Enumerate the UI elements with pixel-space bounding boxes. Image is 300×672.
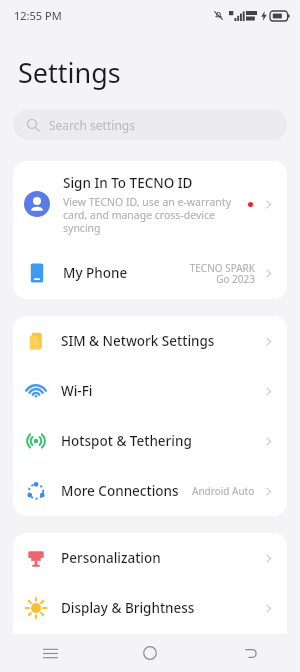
button[interactable]: More Connections [13, 466, 287, 516]
button[interactable]: Back [230, 634, 270, 672]
staticText: 12:55 PM [14, 8, 62, 23]
button[interactable]: Search settings [13, 109, 287, 140]
staticText: More Connections [61, 482, 179, 500]
staticText: Settings [18, 54, 121, 91]
staticText: TECNO SPARK Go 2023 [187, 261, 255, 286]
button[interactable]: Sign In To TECNO ID [13, 161, 287, 247]
button[interactable]: Sound & Vibration [13, 633, 287, 672]
staticText: SIM & Network Settings [61, 332, 215, 350]
staticText: Hotspot & Tethering [61, 432, 192, 450]
staticText: Android Auto [192, 484, 255, 498]
staticText: View TECNO ID, use an e-warranty card, a… [63, 195, 242, 235]
staticText: Search settings [49, 117, 135, 133]
staticText: Sound & Vibration [61, 644, 178, 662]
staticText: Display & Brightness [61, 599, 195, 617]
button[interactable]: Personalization [13, 533, 287, 583]
button[interactable]: Display & Brightness [13, 583, 287, 633]
staticText: Personalization [61, 549, 161, 567]
button[interactable]: SIM & Network Settings [13, 316, 287, 366]
staticText: My Phone [63, 264, 128, 282]
button[interactable]: Recent apps [30, 634, 70, 672]
staticText: Wi-Fi [61, 382, 93, 400]
button[interactable]: Hotspot & Tethering [13, 416, 287, 466]
staticText: Sign In To TECNO ID [63, 174, 193, 192]
button[interactable]: Home [130, 634, 170, 672]
button[interactable]: My Phone [13, 247, 287, 299]
button[interactable]: Wi-Fi [13, 366, 287, 416]
